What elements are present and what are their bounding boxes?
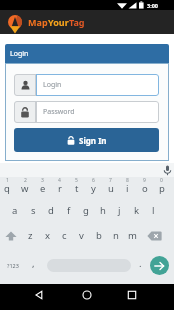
- staticText: 1: [6, 177, 9, 183]
- staticText: Sign In: [79, 135, 107, 146]
- staticText: u: [108, 182, 114, 195]
- button[interactable]: ?123: [2, 258, 24, 272]
- staticText: q: [4, 182, 10, 195]
- button[interactable]: h: [94, 204, 111, 217]
- staticText: m: [128, 229, 137, 242]
- staticText: j: [118, 204, 121, 217]
- staticText: 5: [75, 177, 78, 183]
- staticText: x: [45, 229, 51, 242]
- staticText: c: [62, 229, 67, 242]
- button[interactable]: l: [145, 204, 162, 217]
- staticText: n: [113, 229, 119, 242]
- button[interactable]: t: [68, 182, 85, 195]
- staticText: Map: [28, 16, 48, 28]
- button[interactable]: ,: [26, 255, 40, 271]
- button[interactable]: Sign In: [14, 128, 159, 152]
- button[interactable]: a: [6, 204, 24, 217]
- staticText: y: [91, 182, 96, 195]
- button[interactable]: i: [119, 182, 136, 195]
- staticText: 0: [160, 177, 163, 183]
- button[interactable]: f: [60, 204, 77, 217]
- staticText: r: [58, 182, 62, 195]
- staticText: a: [12, 204, 18, 217]
- button[interactable]: w: [16, 182, 34, 195]
- button[interactable]: [28, 284, 50, 305]
- staticText: l: [152, 204, 155, 217]
- button[interactable]: [144, 228, 164, 243]
- staticText: 6: [92, 177, 95, 183]
- staticText: p: [159, 182, 165, 195]
- button[interactable]: d: [42, 204, 60, 217]
- staticText: t: [75, 182, 79, 195]
- staticText: Login: [10, 49, 29, 59]
- button[interactable]: .: [133, 255, 147, 271]
- staticText: 9: [143, 177, 146, 183]
- staticText: v: [79, 229, 84, 242]
- button[interactable]: Password: [14, 101, 159, 123]
- staticText: .: [139, 257, 142, 270]
- staticText: Your: [48, 16, 69, 28]
- button[interactable]: j: [111, 204, 128, 217]
- staticText: h: [100, 204, 106, 217]
- button[interactable]: m: [124, 229, 141, 242]
- staticText: 3:00: [147, 2, 158, 9]
- staticText: w: [21, 182, 29, 195]
- button[interactable]: [150, 256, 169, 275]
- button[interactable]: [160, 163, 174, 177]
- staticText: i: [126, 182, 129, 195]
- staticText: ?123: [7, 262, 19, 269]
- staticText: 7: [109, 177, 112, 183]
- staticText: Password: [43, 107, 75, 117]
- staticText: 4: [58, 177, 61, 183]
- button[interactable]: v: [73, 229, 90, 242]
- staticText: ,: [32, 257, 35, 270]
- staticText: Login: [43, 80, 62, 90]
- button[interactable]: Map: [28, 11, 85, 33]
- button[interactable]: u: [102, 182, 119, 195]
- staticText: 3: [41, 177, 44, 183]
- button[interactable]: [76, 284, 98, 305]
- staticText: d: [48, 204, 54, 217]
- button[interactable]: x: [39, 229, 56, 242]
- button[interactable]: n: [107, 229, 124, 242]
- staticText: s: [31, 204, 36, 217]
- staticText: 2: [24, 177, 27, 183]
- staticText: Tag: [69, 16, 85, 28]
- button[interactable]: y: [85, 182, 102, 195]
- staticText: b: [96, 229, 102, 242]
- staticText: e: [40, 182, 46, 195]
- button[interactable]: [121, 284, 143, 305]
- button[interactable]: q: [0, 182, 16, 195]
- button[interactable]: s: [24, 204, 42, 217]
- button[interactable]: o: [136, 182, 153, 195]
- staticText: f: [67, 204, 71, 217]
- button[interactable]: z: [21, 229, 39, 242]
- button[interactable]: k: [128, 204, 145, 217]
- button[interactable]: e: [34, 182, 51, 195]
- button[interactable]: Login: [14, 74, 159, 96]
- button[interactable]: b: [90, 229, 107, 242]
- staticText: z: [28, 229, 33, 242]
- staticText: o: [142, 182, 148, 195]
- staticText: g: [83, 204, 89, 217]
- button[interactable]: c: [56, 229, 73, 242]
- staticText: k: [134, 204, 140, 217]
- staticText: 8: [126, 177, 129, 183]
- button[interactable]: p: [153, 182, 170, 195]
- button[interactable]: [3, 228, 19, 243]
- button[interactable]: g: [77, 204, 94, 217]
- button[interactable]: r: [51, 182, 68, 195]
